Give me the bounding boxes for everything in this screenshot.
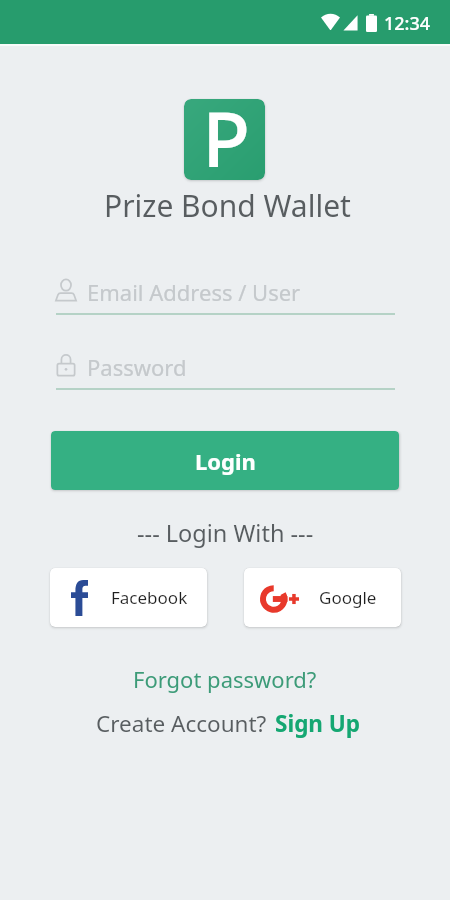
staticText: Google [319, 586, 377, 609]
staticText: Sign Up [275, 708, 361, 739]
staticText: Forgot password? [133, 664, 317, 694]
staticText: Login [195, 446, 256, 476]
staticText: Email Address / User [87, 277, 301, 307]
staticText: 12:34 [384, 11, 431, 36]
button[interactable]: Forgot password? [127, 662, 323, 696]
staticText: Prize Bond Wallet [104, 185, 351, 226]
button[interactable]: Sign Up [275, 708, 361, 739]
staticText: Facebook [111, 586, 188, 609]
staticText: P [202, 99, 251, 167]
button[interactable]: Password [50, 355, 400, 395]
staticText: Create Account? [96, 708, 267, 739]
button[interactable]: Email Address / User [50, 280, 400, 320]
staticText: --- Login With --- [137, 517, 314, 549]
button[interactable]: Login [51, 431, 399, 490]
staticText: Password [87, 352, 187, 382]
button[interactable]: Google [244, 568, 401, 627]
button[interactable]: Facebook [50, 568, 207, 627]
